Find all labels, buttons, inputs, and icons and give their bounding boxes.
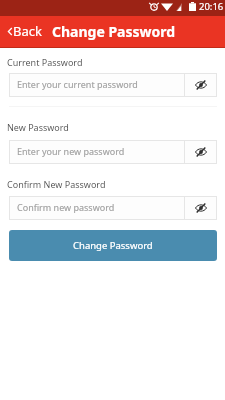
staticText: Confirm New Password [7, 178, 106, 190]
staticText: Back [13, 22, 42, 40]
staticText: New Password [7, 121, 69, 133]
staticText: Confirm new password [17, 201, 184, 213]
staticText: Change Password [52, 22, 176, 41]
staticText: Enter your current password [17, 78, 184, 90]
button[interactable]: Back [0, 22, 46, 40]
staticText: Enter your new password [17, 145, 184, 157]
button[interactable]: Change Password [9, 230, 217, 261]
button[interactable]: Show password [185, 74, 216, 96]
staticText: Current Password [7, 56, 83, 68]
button[interactable]: Show password [185, 141, 216, 163]
staticText: 20:16 [199, 0, 224, 13]
button[interactable]: Show password [185, 197, 216, 219]
staticText: Change Password [73, 239, 153, 252]
